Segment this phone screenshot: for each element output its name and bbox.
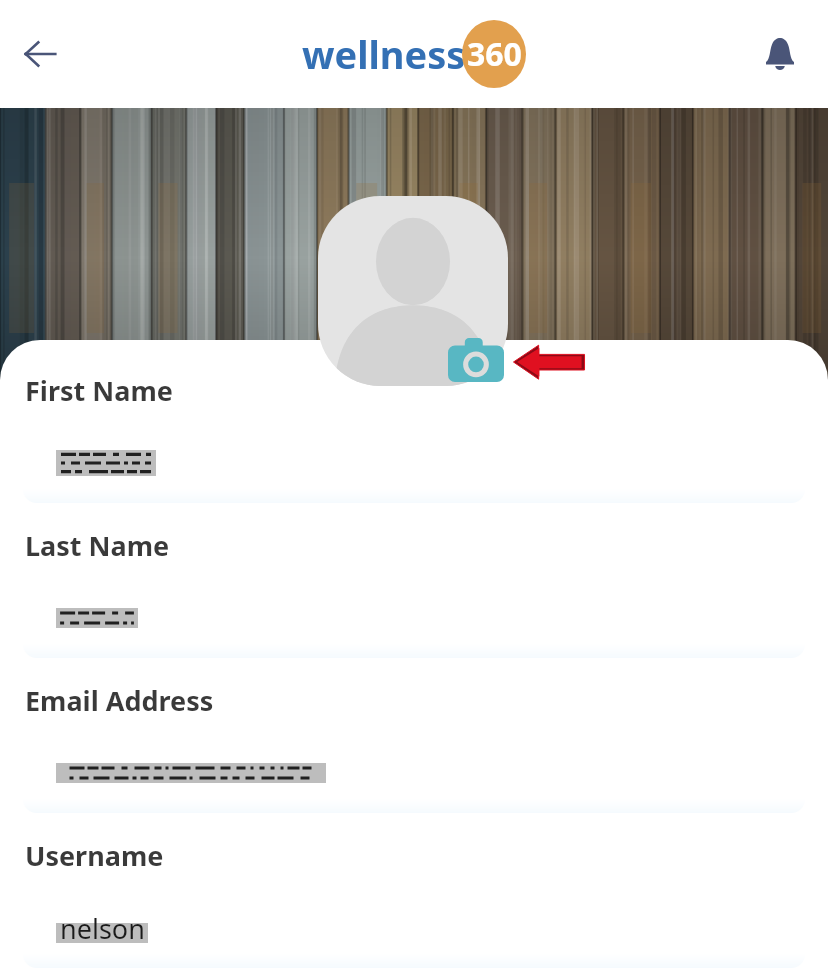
- button[interactable]: Notifications: [752, 26, 808, 82]
- staticText: wellness: [302, 28, 466, 80]
- button[interactable]: [23, 578, 805, 658]
- button[interactable]: nelson: [23, 888, 805, 968]
- staticText: Username: [25, 837, 164, 874]
- button[interactable]: Back: [12, 26, 68, 82]
- button[interactable]: Change profile photo: [448, 338, 504, 382]
- button[interactable]: [23, 733, 805, 813]
- staticText: nelson: [60, 910, 145, 947]
- button[interactable]: [23, 423, 805, 503]
- button[interactable]: [318, 196, 508, 386]
- staticText: Email Address: [25, 682, 214, 719]
- staticText: First Name: [25, 372, 173, 409]
- staticText: Last Name: [25, 527, 170, 564]
- staticText: 360: [467, 32, 522, 76]
